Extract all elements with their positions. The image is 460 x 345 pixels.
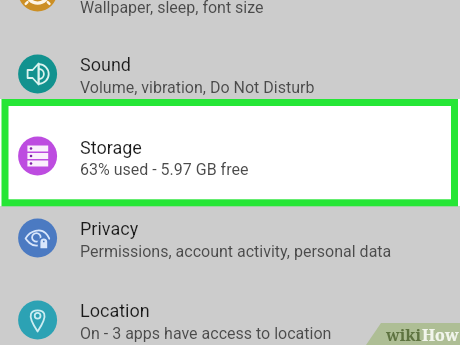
staticText: Sound [80, 54, 131, 75]
staticText: Privacy [80, 218, 139, 239]
button[interactable]: Privacy [0, 197, 460, 279]
button[interactable]: Location [0, 279, 460, 345]
staticText: Volume, vibration, Do Not Disturb [80, 78, 315, 97]
staticText: Storage [80, 137, 142, 158]
button[interactable]: Display [0, 0, 460, 33]
button[interactable]: Sound [0, 33, 460, 115]
staticText: wiki [386, 324, 422, 345]
staticText: Wallpaper, sleep, font size [80, 0, 264, 17]
staticText: On - 3 apps have access to location [80, 324, 332, 343]
staticText: 63% used - 5.97 GB free [80, 160, 249, 179]
staticText: Location [80, 300, 150, 321]
staticText: How [422, 324, 459, 345]
staticText: Permissions, account activity, personal … [80, 242, 392, 261]
button[interactable]: Storage [0, 115, 460, 197]
